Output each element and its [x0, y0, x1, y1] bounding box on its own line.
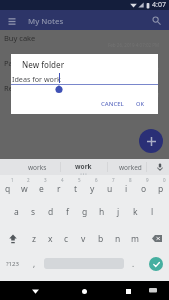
staticText: o: [141, 183, 147, 195]
button[interactable]: Add note: [139, 129, 163, 153]
staticText: ?123: [6, 260, 19, 268]
staticText: .: [132, 258, 135, 269]
staticText: a: [14, 206, 19, 218]
button[interactable]: s: [25, 201, 42, 226]
button[interactable]: g: [76, 201, 93, 226]
button[interactable]: Enter: [143, 251, 169, 276]
staticText: 4:07: [152, 0, 166, 10]
button[interactable]: 5: [67, 176, 84, 201]
button[interactable]: d: [42, 201, 59, 226]
staticText: Buy cake: [4, 33, 36, 43]
button[interactable]: work: [60, 159, 107, 175]
button[interactable]: f: [59, 201, 76, 226]
staticText: ,: [33, 258, 36, 269]
staticText: work: [75, 162, 92, 171]
staticText: y: [90, 183, 95, 195]
button[interactable]: 7: [101, 176, 118, 201]
staticText: l: [151, 206, 154, 218]
staticText: 6: [95, 177, 98, 183]
staticText: Feb 26, 2019 4:06:10 PM: [108, 67, 160, 73]
staticText: n: [115, 233, 121, 245]
button[interactable]: ?123: [0, 251, 25, 276]
staticText: CANCEL: [101, 100, 124, 108]
staticText: s: [31, 206, 36, 218]
button[interactable]: Menu: [4, 13, 20, 29]
button[interactable]: Recents: [116, 281, 140, 300]
button[interactable]: 3: [33, 176, 50, 201]
staticText: g: [82, 206, 88, 218]
staticText: Read book: [4, 83, 42, 93]
button[interactable]: c: [58, 226, 75, 251]
staticText: c: [64, 233, 69, 245]
button[interactable]: Voice input: [151, 159, 169, 175]
staticText: j: [117, 206, 120, 218]
staticText: 5: [78, 177, 81, 183]
button[interactable]: z: [26, 226, 42, 251]
button[interactable]: v: [75, 226, 92, 251]
staticText: worked: [119, 163, 142, 172]
staticText: k: [133, 206, 138, 218]
button[interactable]: ,: [25, 251, 44, 276]
button[interactable]: Back: [23, 281, 47, 300]
button[interactable]: CANCEL: [97, 98, 128, 110]
button[interactable]: 9: [135, 176, 152, 201]
staticText: New folder: [22, 59, 65, 70]
staticText: h: [99, 206, 105, 218]
button[interactable]: 4: [50, 176, 67, 201]
staticText: m: [131, 233, 139, 245]
button[interactable]: b: [92, 226, 109, 251]
button[interactable]: j: [110, 201, 127, 226]
staticText: Feb 25, 2019 9:12:00 AM: [108, 92, 160, 98]
staticText: x: [48, 233, 53, 245]
button[interactable]: Backspace: [144, 226, 169, 251]
button[interactable]: 1: [0, 176, 16, 201]
staticText: d: [48, 206, 54, 218]
staticText: b: [98, 233, 104, 245]
button[interactable]: n: [109, 226, 126, 251]
button[interactable]: Hide keyboard: [142, 281, 164, 300]
button[interactable]: OK: [132, 98, 148, 110]
button[interactable]: 6: [84, 176, 101, 201]
button[interactable]: works: [14, 159, 60, 175]
button[interactable]: Home: [72, 281, 96, 300]
staticText: e: [39, 183, 44, 195]
staticText: f: [66, 206, 69, 218]
button[interactable]: k: [127, 201, 144, 226]
staticText: 2: [27, 177, 30, 183]
button[interactable]: 0: [152, 176, 169, 201]
staticText: r: [57, 183, 61, 195]
button[interactable]: Shift: [0, 226, 25, 251]
button[interactable]: Pay bills: [0, 59, 169, 84]
button[interactable]: 2: [16, 176, 33, 201]
staticText: 0: [163, 177, 166, 183]
staticText: My Notes: [28, 16, 64, 27]
staticText: w: [21, 183, 28, 195]
button[interactable]: a: [8, 201, 25, 226]
button[interactable]: m: [126, 226, 143, 251]
staticText: 7: [112, 177, 115, 183]
staticText: 8: [129, 177, 132, 183]
staticText: t: [74, 183, 78, 195]
button[interactable]: h: [93, 201, 110, 226]
button[interactable]: worked: [107, 159, 154, 175]
staticText: u: [107, 183, 113, 195]
staticText: i: [125, 183, 128, 195]
button[interactable]: Read book: [0, 84, 169, 109]
staticText: z: [32, 233, 36, 245]
staticText: q: [5, 183, 11, 195]
button[interactable]: .: [124, 251, 143, 276]
button[interactable]: x: [42, 226, 58, 251]
staticText: OK: [136, 100, 144, 108]
button[interactable]: Buy cake: [0, 34, 169, 59]
button[interactable]: l: [144, 201, 161, 226]
button[interactable]: 8: [118, 176, 135, 201]
staticText: 4: [61, 177, 64, 183]
staticText: p: [158, 183, 164, 195]
staticText: 3: [44, 177, 47, 183]
staticText: 9: [146, 177, 149, 183]
button[interactable]: Search: [148, 12, 164, 28]
staticText: 1: [11, 177, 14, 183]
staticText: works: [28, 163, 47, 172]
